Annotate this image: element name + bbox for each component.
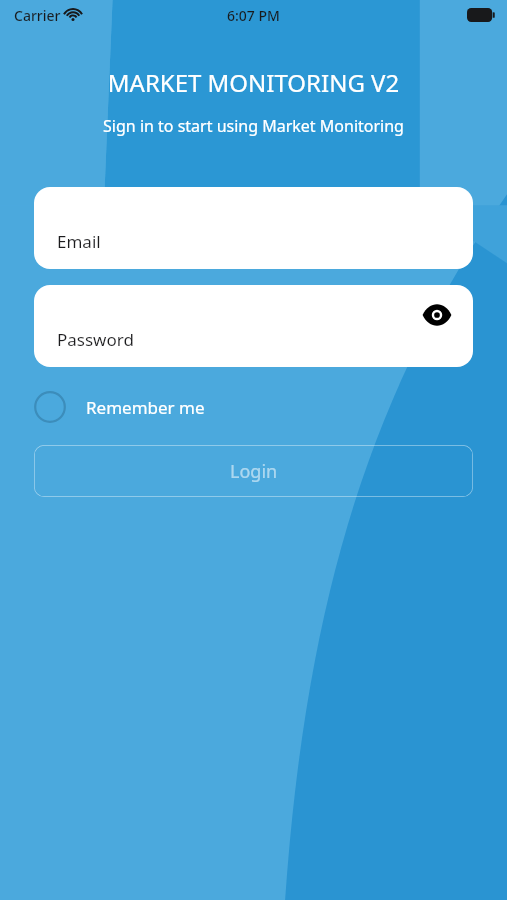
staticText: Login [230,459,278,484]
staticText: MARKET MONITORING V2 [0,66,507,99]
button[interactable]: Show password [419,297,455,333]
button[interactable]: Login [34,445,473,497]
staticText: Email [57,230,101,253]
button[interactable]: Password [34,285,473,367]
staticText: Password [57,328,134,351]
staticText: 6:07 PM [227,6,280,25]
staticText: Sign in to start using Market Monitoring [0,115,507,137]
button[interactable]: Remember me [34,385,205,429]
staticText: Remember me [86,396,205,419]
button[interactable]: Email [34,187,473,269]
staticText: Carrier [14,6,61,25]
